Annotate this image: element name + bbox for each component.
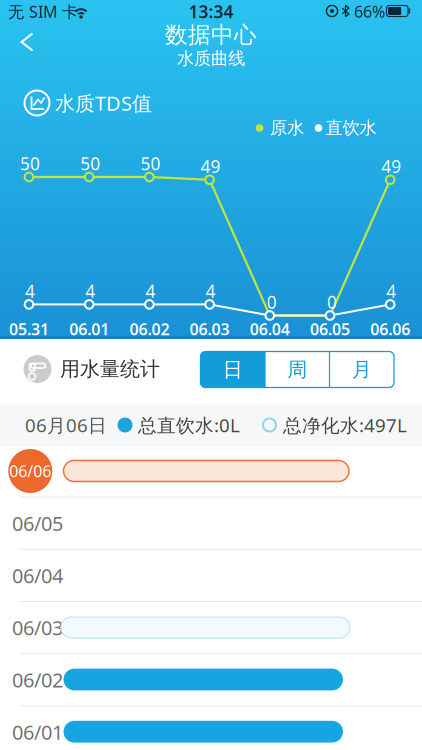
button[interactable]: 周 [265, 351, 329, 387]
staticText: 总直饮水:0L [138, 413, 240, 437]
staticText: 06.06 [370, 318, 410, 340]
staticText: 日 [223, 357, 243, 382]
staticText: 50 [80, 152, 100, 175]
staticText: 49 [381, 155, 401, 178]
staticText: 49 [201, 155, 221, 178]
staticText: 4 [386, 279, 396, 302]
staticText: 4 [145, 279, 155, 302]
button[interactable]: 日 [201, 351, 265, 387]
staticText: 无 SIM 卡 [8, 1, 78, 22]
staticText: 06/02 [12, 666, 63, 693]
staticText: 50 [20, 152, 40, 175]
staticText: 06.05 [310, 318, 350, 340]
staticText: 06.02 [129, 318, 169, 340]
button[interactable]: 06/05 [0, 497, 422, 549]
staticText: 06.03 [190, 318, 230, 340]
button[interactable]: 06/06 [0, 445, 422, 497]
staticText: 06月06日 [25, 413, 107, 437]
staticText: 用水量统计 [60, 357, 160, 381]
staticText: 66% [354, 1, 385, 22]
staticText: 06.01 [69, 318, 109, 340]
staticText: 0 [267, 290, 277, 313]
button[interactable]: 06/01 [0, 706, 422, 750]
staticText: 06/06 [9, 460, 51, 482]
staticText: 0 [327, 290, 337, 313]
staticText: 06/05 [12, 510, 63, 536]
staticText: 月 [352, 357, 372, 382]
staticText: 水质TDS值 [55, 90, 152, 116]
staticText: 直饮水 [325, 117, 376, 139]
staticText: 4 [85, 279, 95, 302]
staticText: 13:34 [188, 0, 233, 23]
staticText: 原水 [270, 117, 304, 139]
button[interactable]: 06/03 [0, 601, 422, 654]
staticText: 4 [206, 279, 216, 302]
staticText: 06/04 [12, 562, 63, 589]
staticText: 周 [287, 357, 307, 382]
staticText: 06.04 [250, 318, 290, 340]
staticText: 05.31 [9, 318, 49, 340]
staticText: 50 [140, 152, 160, 175]
button[interactable]: 06/04 [0, 549, 422, 601]
staticText: 06/01 [12, 719, 63, 745]
staticText: 总净化水:497L [283, 413, 407, 437]
button[interactable]: 06/02 [0, 654, 422, 706]
button[interactable]: Back [3, 27, 47, 57]
staticText: 水质曲线 [177, 48, 245, 69]
button[interactable]: 月 [330, 351, 394, 387]
staticText: 数据中心 [165, 21, 257, 49]
staticText: 06/03 [12, 614, 63, 641]
staticText: 4 [25, 279, 35, 302]
